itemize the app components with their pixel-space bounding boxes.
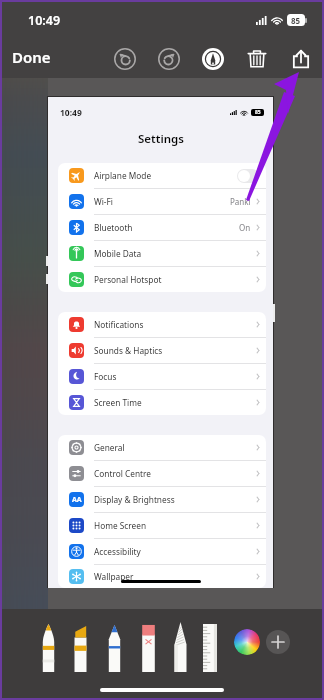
staticText: On <box>239 222 251 233</box>
button[interactable]: General <box>58 435 266 460</box>
button[interactable]: Control Centre <box>58 461 266 486</box>
staticText: General <box>94 442 125 453</box>
button[interactable]: Tool 2 <box>73 624 88 672</box>
button[interactable]: Mobile Data <box>58 241 266 266</box>
staticText: Pankl <box>230 196 251 207</box>
button[interactable]: Tool 5 <box>173 622 188 672</box>
button[interactable]: Colour picker <box>234 629 260 655</box>
staticText: Airplane Mode <box>94 170 152 181</box>
button[interactable]: Personal Hotspot <box>58 267 266 292</box>
staticText: Settings <box>138 131 184 147</box>
button[interactable]: Bluetooth <box>58 215 266 240</box>
staticText: Accessibility <box>94 546 141 557</box>
button[interactable]: Ruler <box>203 624 217 672</box>
staticText: Done <box>12 47 51 67</box>
button[interactable]: Wallpaper <box>58 565 266 588</box>
button[interactable]: Tool 4 <box>141 624 156 672</box>
button[interactable]: Notifications <box>58 312 266 337</box>
button[interactable]: Delete <box>235 44 279 74</box>
staticText: Wi-Fi <box>94 196 113 207</box>
button[interactable]: Done <box>0 42 63 72</box>
staticText: 85 <box>291 15 301 26</box>
button[interactable]: Add <box>266 630 290 654</box>
button[interactable]: Accessibility <box>58 539 266 564</box>
button[interactable]: Wi-Fi <box>58 189 266 214</box>
staticText: Display & Brightness <box>94 494 175 505</box>
button[interactable]: Sounds & Haptics <box>58 338 266 363</box>
staticText: Bluetooth <box>94 222 133 233</box>
button[interactable]: Tool 1 <box>41 624 56 672</box>
staticText: Focus <box>94 371 117 382</box>
button[interactable]: Screen Time <box>58 390 266 415</box>
staticText: Notifications <box>94 319 144 330</box>
button[interactable]: Undo <box>103 44 147 74</box>
button[interactable]: Airplane Mode <box>58 163 266 188</box>
staticText: 10:49 <box>60 107 82 119</box>
button[interactable]: Redo <box>147 44 191 74</box>
button[interactable]: Focus <box>58 364 266 389</box>
button[interactable]: Home Screen <box>58 513 266 538</box>
staticText: Wallpaper <box>94 571 134 582</box>
button[interactable]: AA <box>58 487 266 512</box>
button[interactable]: Share <box>279 44 323 74</box>
staticText: Screen Time <box>94 397 142 408</box>
staticText: 85 <box>255 109 261 116</box>
button[interactable]: Markup tools <box>191 44 235 74</box>
staticText: Personal Hotspot <box>94 274 162 285</box>
staticText: 10:49 <box>28 12 61 29</box>
staticText: AA <box>72 495 82 505</box>
button[interactable]: Tool 3 <box>107 624 122 672</box>
staticText: Sounds & Haptics <box>94 345 163 356</box>
staticText: Mobile Data <box>94 248 142 259</box>
staticText: Control Centre <box>94 468 151 479</box>
staticText: Home Screen <box>94 520 147 531</box>
